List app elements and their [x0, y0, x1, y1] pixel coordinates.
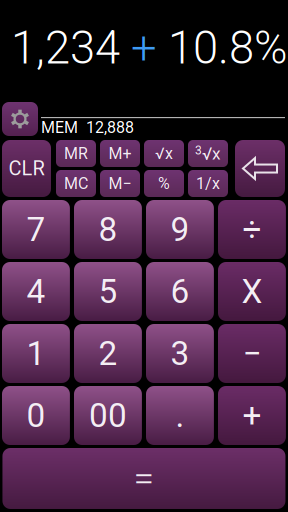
button[interactable]: %: [144, 170, 184, 197]
staticText: MR: [64, 144, 88, 163]
staticText: 2: [98, 334, 117, 373]
button[interactable]: Backspace: [235, 140, 285, 197]
staticText: MEM 12,888: [41, 118, 134, 137]
staticText: MC: [64, 174, 88, 193]
button[interactable]: 3: [146, 324, 214, 383]
button[interactable]: ÷: [218, 200, 286, 259]
button[interactable]: 3√x: [188, 140, 228, 167]
staticText: 3: [170, 334, 189, 373]
staticText: 4: [26, 272, 45, 311]
button[interactable]: MR: [56, 140, 96, 167]
button[interactable]: 2: [74, 324, 142, 383]
staticText: X: [241, 272, 262, 311]
button[interactable]: CLR: [2, 140, 51, 197]
staticText: +: [242, 396, 261, 435]
button[interactable]: √x: [144, 140, 184, 167]
button[interactable]: Settings: [2, 102, 38, 136]
staticText: 7: [26, 210, 45, 249]
button[interactable]: 8: [74, 200, 142, 259]
staticText: 3√x: [195, 143, 221, 163]
staticText: √x: [155, 144, 173, 163]
staticText: 1/x: [196, 174, 220, 193]
button[interactable]: 6: [146, 262, 214, 321]
staticText: 5: [98, 272, 117, 311]
staticText: M−: [108, 174, 131, 193]
button[interactable]: 4: [2, 262, 70, 321]
staticText: 1: [26, 334, 45, 373]
staticText: 1,234 + 10.8%: [11, 21, 288, 74]
button[interactable]: 7: [2, 200, 70, 259]
staticText: 0: [26, 396, 45, 435]
staticText: M+: [108, 144, 131, 163]
staticText: −: [242, 334, 261, 373]
staticText: =: [133, 457, 154, 500]
button[interactable]: .: [146, 386, 214, 445]
button[interactable]: +: [218, 386, 286, 445]
staticText: .: [175, 396, 184, 435]
button[interactable]: 1/x: [188, 170, 228, 197]
button[interactable]: 0: [2, 386, 70, 445]
button[interactable]: 5: [74, 262, 142, 321]
button[interactable]: X: [218, 262, 286, 321]
staticText: 00: [89, 396, 127, 435]
staticText: ÷: [242, 210, 261, 249]
staticText: 6: [170, 272, 189, 311]
staticText: CLR: [8, 157, 44, 180]
button[interactable]: 00: [74, 386, 142, 445]
staticText: 9: [170, 210, 189, 249]
button[interactable]: −: [218, 324, 286, 383]
staticText: 8: [98, 210, 117, 249]
button[interactable]: MC: [56, 170, 96, 197]
button[interactable]: 9: [146, 200, 214, 259]
button[interactable]: 1: [2, 324, 70, 383]
button[interactable]: M+: [100, 140, 140, 167]
button[interactable]: =: [2, 448, 285, 509]
button[interactable]: M−: [100, 170, 140, 197]
staticText: %: [158, 174, 170, 193]
